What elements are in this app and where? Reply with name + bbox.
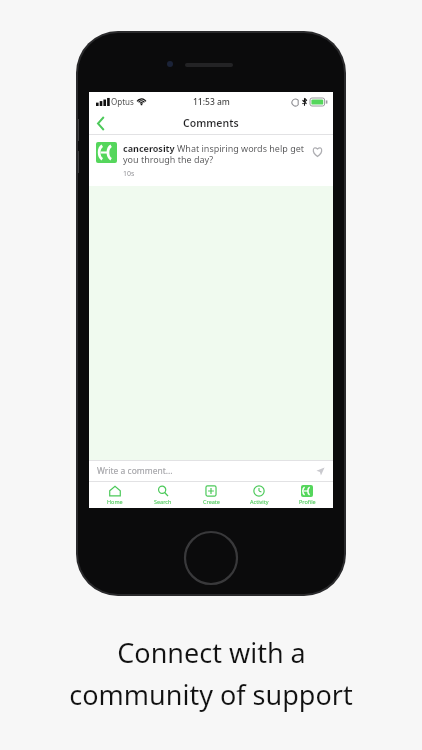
staticText: Home (107, 498, 123, 505)
staticText: 10s (123, 169, 135, 179)
staticText: Search (154, 498, 172, 505)
staticText: Optus (111, 96, 134, 107)
button[interactable]: Send (313, 464, 327, 478)
button[interactable]: Activity (237, 483, 281, 507)
staticText: cancerosity What inspiring words help ge… (123, 142, 304, 166)
staticText: Activity (250, 498, 269, 505)
staticText: Comments (183, 116, 239, 130)
button[interactable]: Home (93, 483, 137, 507)
staticText: Connect with a (117, 634, 306, 671)
button[interactable]: Back (89, 111, 113, 135)
button[interactable]: cancerosity What inspiring words help ge… (89, 135, 333, 186)
staticText: Profile (299, 498, 316, 505)
staticText: Create (203, 498, 220, 505)
button[interactable]: Like (308, 142, 326, 160)
staticText: community of support (69, 676, 353, 713)
staticText: Write a comment... (97, 465, 173, 477)
button[interactable]: Search (141, 483, 185, 507)
button[interactable]: Create (189, 483, 233, 507)
staticText: 11:53 am (193, 96, 230, 108)
button[interactable]: Profile (285, 483, 329, 507)
button[interactable]: Write a comment... (89, 460, 333, 482)
